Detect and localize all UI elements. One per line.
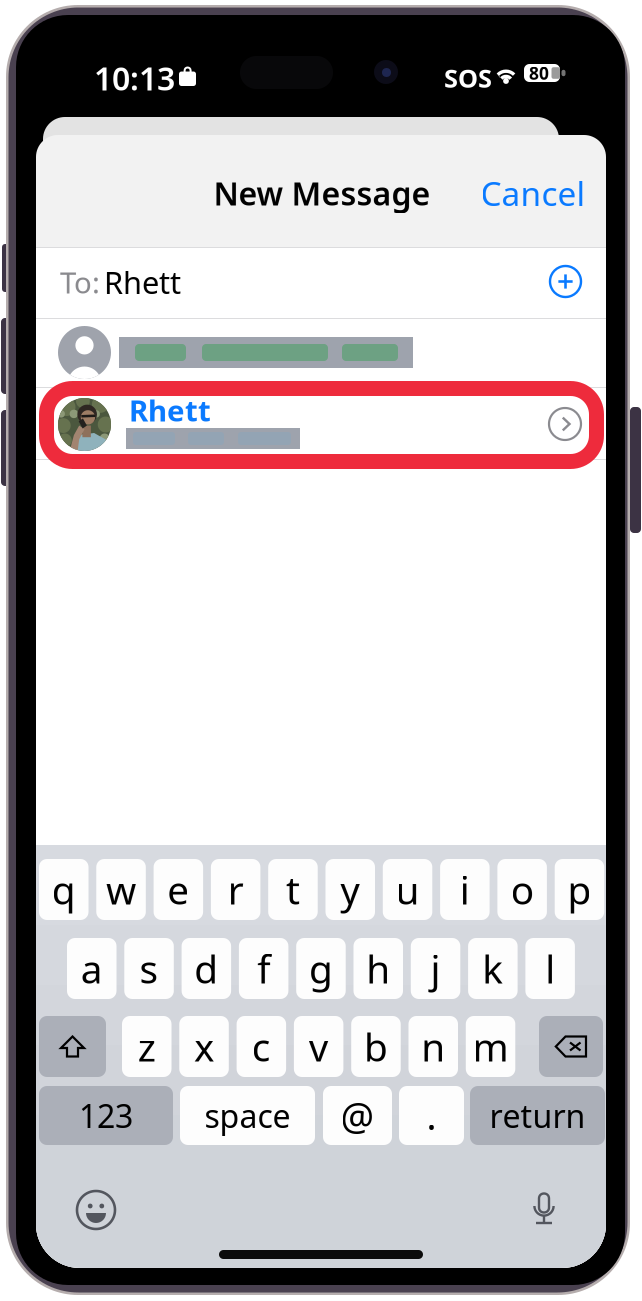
button[interactable]: d (182, 938, 231, 999)
staticText: y (340, 864, 360, 915)
staticText: Cancel (480, 171, 585, 215)
staticText: SOS (444, 61, 492, 95)
button[interactable]: Dictation (528, 1189, 560, 1231)
staticText: e (167, 864, 189, 915)
staticText: 10:13 (94, 57, 175, 99)
button[interactable]: m (466, 1016, 515, 1077)
staticText: d (194, 943, 218, 994)
button[interactable]: 123 (39, 1086, 173, 1145)
staticText: u (395, 864, 419, 915)
staticText: i (460, 864, 470, 915)
button[interactable]: e (154, 859, 203, 920)
staticText: t (286, 864, 300, 915)
staticText: f (257, 943, 270, 994)
button[interactable]: n (408, 1016, 458, 1077)
staticText: @ (340, 1091, 374, 1140)
button[interactable]: s (124, 938, 174, 999)
staticText: 123 (79, 1094, 133, 1137)
button[interactable]: o (497, 859, 547, 920)
button[interactable]: j (411, 938, 460, 999)
button[interactable]: k (468, 938, 518, 999)
button[interactable]: c (237, 1016, 286, 1077)
button[interactable]: q (39, 859, 88, 920)
button[interactable]: t (268, 859, 318, 920)
staticText: j (430, 943, 440, 994)
button[interactable]: Cancel (484, 174, 582, 212)
button[interactable]: p (555, 859, 604, 920)
staticText: h (366, 943, 390, 994)
button[interactable]: f (239, 938, 288, 999)
staticText: Rhett (104, 262, 181, 302)
staticText: z (138, 1021, 156, 1072)
staticText: c (252, 1021, 271, 1072)
staticText: o (511, 864, 534, 915)
button[interactable]: y (325, 859, 375, 920)
staticText: space (204, 1094, 290, 1137)
staticText: l (545, 943, 555, 994)
staticText: p (567, 864, 591, 915)
button[interactable]: w (96, 859, 146, 920)
staticText: k (482, 943, 503, 994)
staticText: Rhett (129, 390, 211, 429)
button[interactable]: b (351, 1016, 401, 1077)
staticText: b (364, 1021, 388, 1072)
button[interactable]: space (180, 1086, 315, 1145)
staticText: m (472, 1021, 508, 1072)
button[interactable]: g (296, 938, 346, 999)
button[interactable]: r (211, 859, 260, 920)
button[interactable]: . (399, 1086, 464, 1145)
button[interactable]: h (353, 938, 403, 999)
button[interactable]: a (67, 938, 116, 999)
staticText: w (106, 864, 136, 915)
staticText: return (489, 1094, 585, 1137)
staticText: a (81, 943, 103, 994)
staticText: r (228, 864, 244, 915)
button[interactable]: @ (323, 1086, 392, 1145)
button[interactable]: u (383, 859, 432, 920)
staticText: . (426, 1091, 436, 1140)
staticText: n (421, 1021, 445, 1072)
button[interactable]: l (525, 938, 575, 999)
button[interactable]: return (470, 1086, 605, 1145)
button[interactable]: v (294, 1016, 343, 1077)
staticText: New Message (213, 172, 430, 214)
button[interactable]: Delete (539, 1016, 603, 1077)
button[interactable]: Add contact (550, 266, 581, 297)
staticText: q (52, 864, 76, 915)
staticText: g (309, 943, 333, 994)
button[interactable]: Shift (39, 1016, 106, 1077)
button[interactable]: i (440, 859, 490, 920)
button[interactable]: z (122, 1016, 171, 1077)
staticText: x (194, 1021, 214, 1072)
staticText: 80 (529, 61, 549, 84)
staticText: To: (60, 262, 100, 301)
button[interactable]: x (179, 1016, 229, 1077)
staticText: s (140, 943, 159, 994)
button[interactable]: Emoji (77, 1191, 115, 1229)
staticText: v (309, 1021, 329, 1072)
